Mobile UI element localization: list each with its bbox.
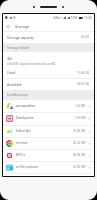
staticText: Editor 4pt (16, 129, 31, 133)
staticText: 32.09 MB (73, 165, 86, 169)
button[interactable]: NPCtv (3, 149, 94, 161)
button[interactable]: Used (3, 67, 94, 78)
staticText: 4/1 (7, 129, 13, 134)
staticText: Available (7, 82, 22, 87)
staticText: 48.52 GB (77, 82, 90, 86)
staticText: es file explorer (16, 165, 39, 169)
staticText: Storage details (7, 46, 30, 50)
staticText: chrome (16, 141, 28, 145)
staticText: 82.43 MB (73, 141, 86, 145)
staticText: 256b/s (53, 16, 62, 20)
button[interactable]: Storage capacity (3, 31, 94, 43)
staticText: Storage capacity (7, 35, 35, 40)
staticText: 62.08 MB (73, 129, 86, 133)
staticText: Used (7, 70, 16, 75)
staticText: 15.48 GB (77, 71, 90, 75)
button[interactable]: es file explorer (3, 161, 94, 173)
button[interactable]: chrome (3, 137, 94, 149)
staticText: DataSystem (16, 116, 34, 120)
staticText: 7.56 MB (75, 116, 86, 120)
staticText: Installed apps (7, 93, 28, 97)
staticText: 3G (7, 56, 12, 61)
staticText: of 64 GB capacity formatted as exFAT (7, 62, 56, 66)
button[interactable]: Available (3, 78, 94, 90)
staticText: NPCtv (16, 153, 26, 157)
button[interactable]: accuweather (3, 100, 94, 112)
staticText: 64 GB (81, 35, 90, 39)
button[interactable]: DataSystem (3, 112, 94, 124)
staticText: 3.4 MB (76, 104, 86, 108)
staticText: accuweather (16, 104, 36, 108)
button[interactable]: 4/1 (3, 125, 94, 137)
staticText: Storage (15, 24, 30, 29)
staticText: 100% (71, 16, 78, 20)
button[interactable]: Back (3, 21, 13, 31)
staticText: 13:30 (84, 16, 92, 20)
staticText: 48.08 MB (73, 153, 86, 157)
